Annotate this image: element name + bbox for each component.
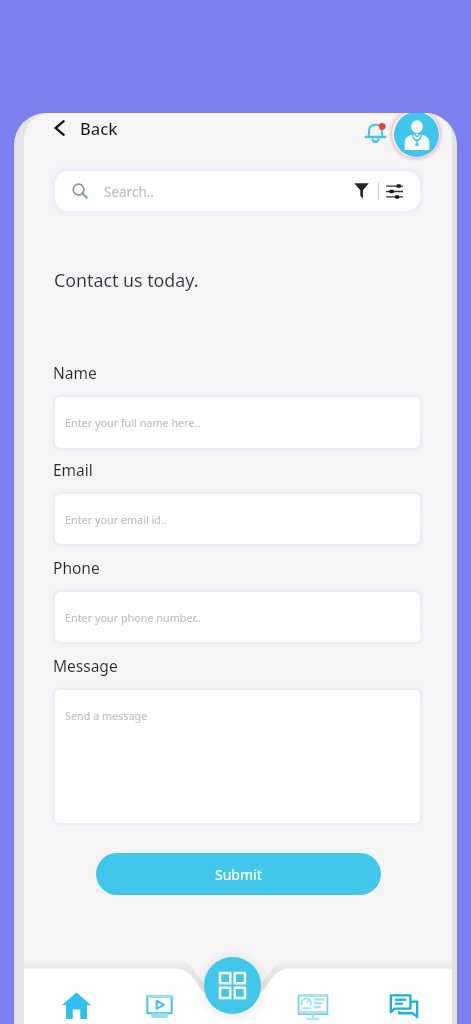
button[interactable]: Send a message [55,690,420,823]
staticText: Name [53,362,97,383]
staticText: Search.. [104,183,154,201]
staticText: Enter your email id.. [65,512,167,527]
button[interactable]: Dashboard [286,982,340,1024]
button[interactable]: Search.. [55,171,420,211]
staticText: Enter your phone number.. [65,610,202,625]
button[interactable]: Home [51,980,102,1024]
staticText: Contact us today. [54,268,199,292]
staticText: Send a message [65,708,148,723]
button[interactable]: Notifications [364,120,387,143]
staticText: Email [53,459,93,480]
button[interactable]: Enter your full name here.. [55,397,420,448]
button[interactable]: Video [134,983,185,1024]
button[interactable]: Profile [394,113,439,157]
button[interactable]: Back [52,114,118,142]
staticText: Message [53,655,118,676]
button[interactable]: Chat [379,982,429,1024]
staticText: Back [80,117,118,139]
button[interactable]: Apps [204,957,261,1014]
staticText: Phone [53,557,100,578]
button[interactable]: Submit [96,853,381,895]
button[interactable]: Enter your email id.. [55,494,420,544]
staticText: Submit [215,865,262,884]
button[interactable]: Enter your phone number.. [55,592,420,642]
staticText: Enter your full name here.. [65,415,201,430]
